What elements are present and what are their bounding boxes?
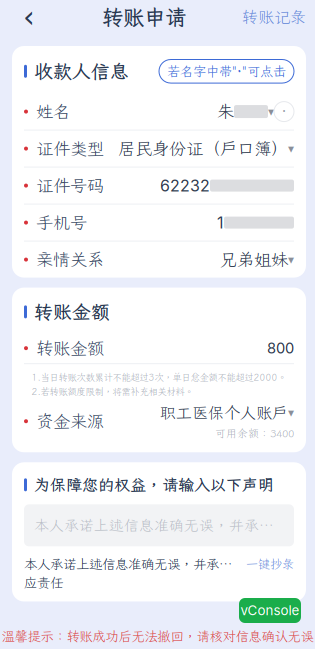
staticText: · [281, 102, 286, 121]
staticText: 转账记录 [242, 6, 306, 28]
staticText: 证件号码 [36, 174, 104, 197]
staticText: 一键抄录 [246, 556, 294, 572]
staticText: 朱 [217, 100, 234, 123]
staticText: 本人承诺上述信息准确无误，并承担相 [24, 555, 242, 573]
staticText: 62232 [160, 176, 210, 195]
staticText: 证件类型 [36, 137, 104, 160]
staticText: 1.当日转账次数累计不能超过3次，单日总金额不能超过2000。 [31, 371, 286, 383]
button[interactable]: Insert separator dot [274, 102, 294, 122]
staticText: 手机号 [36, 211, 87, 234]
staticText: ‹ [23, 0, 35, 34]
staticText: 职工医保个人账户 [160, 402, 288, 423]
staticText: 亲情关系 [36, 248, 104, 271]
staticText: 本人承诺上述信息准确无误，并承担相应责任 [34, 516, 284, 535]
button[interactable]: 一键抄录 [246, 556, 294, 572]
staticText: 居民身份证（户口簿） [118, 137, 288, 160]
button[interactable]: 转账记录 [242, 0, 306, 34]
staticText: 为保障您的权益，请输入以下声明 [34, 474, 274, 495]
staticText: ▾ [288, 253, 294, 267]
staticText: ▾ [288, 142, 294, 156]
button[interactable]: Back [12, 0, 46, 34]
button[interactable]: vConsole [239, 598, 301, 623]
staticText: 可用余额：3400 [215, 426, 294, 440]
staticText: ▾ [268, 105, 274, 119]
staticText: 姓名 [36, 100, 70, 123]
staticText: 1 [217, 213, 224, 232]
staticText: 兄弟姐妹 [220, 248, 288, 271]
staticText: 温馨提示：转账成功后无法撤回，请核对信息确认无误 [1, 627, 313, 645]
staticText: 收款人信息 [34, 59, 129, 84]
staticText: ▾ [288, 406, 294, 420]
staticText: vConsole [240, 602, 299, 618]
staticText: 2.若转账额度限制，将需补充相关材料。 [31, 385, 193, 398]
staticText: 转账金额 [34, 300, 110, 324]
staticText: 转账申请 [102, 3, 186, 31]
staticText: 800 [267, 339, 294, 357]
staticText: 转账金额 [36, 337, 104, 360]
staticText: 资金来源 [36, 410, 104, 433]
staticText: 应责任 [24, 574, 63, 591]
staticText: 若名字中带"·"可点击 [167, 62, 286, 80]
